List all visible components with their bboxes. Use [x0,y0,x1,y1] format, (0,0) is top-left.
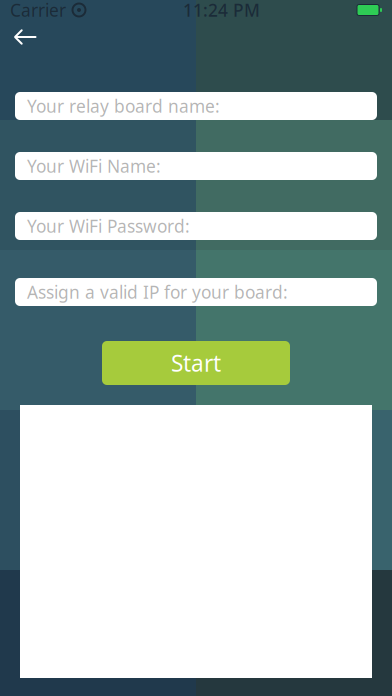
staticText: 11:24 PM [183,0,260,21]
staticText: Assign a valid IP for your board: [27,280,288,303]
button[interactable]: Your WiFi Password: [15,212,377,240]
button[interactable]: Start [102,341,290,385]
button[interactable]: Assign a valid IP for your board: [15,278,377,306]
staticText: Start [171,348,221,378]
button[interactable]: Back [4,20,48,54]
button[interactable]: Your relay board name: [15,92,377,120]
button[interactable]: Your WiFi Name: [15,152,377,180]
staticText: Your WiFi Name: [27,154,161,177]
staticText: Your WiFi Password: [27,214,190,237]
staticText: Carrier [10,0,66,21]
staticText: Your relay board name: [27,94,220,117]
